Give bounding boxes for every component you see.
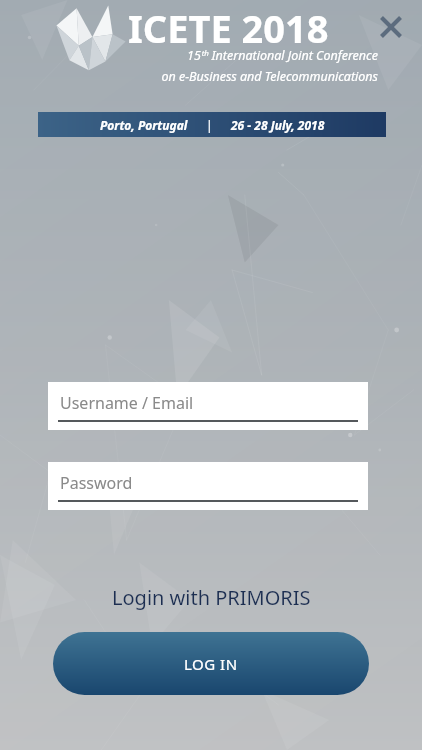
button[interactable]: Login with PRIMORIS (100, 578, 323, 617)
staticText: Login with PRIMORIS (112, 584, 311, 611)
staticText: ICETE 2018 (128, 2, 329, 54)
staticText: 15ᵗʰ International Joint Conference (187, 47, 378, 64)
staticText: Porto, Portugal (100, 117, 188, 133)
staticText: Password (60, 472, 133, 494)
button[interactable]: Close (374, 10, 408, 44)
staticText: | (206, 117, 213, 133)
staticText: Username / Email (60, 392, 194, 414)
staticText: LOG IN (184, 654, 238, 674)
button[interactable]: LOG IN (53, 632, 369, 695)
staticText: on e-Business and Telecommunications (161, 68, 378, 85)
button[interactable]: Username / Email (48, 382, 368, 430)
button[interactable]: Password (48, 462, 368, 510)
staticText: 26 - 28 July, 2018 (231, 117, 325, 133)
